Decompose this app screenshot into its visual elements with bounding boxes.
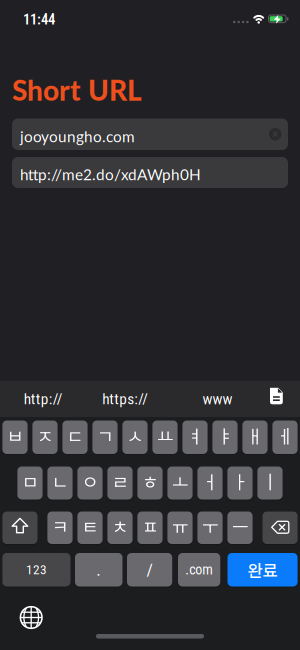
staticText: 완료 <box>248 558 278 582</box>
staticText: ㄱ <box>96 422 113 449</box>
staticText: ㅍ <box>141 512 158 539</box>
button[interactable]: ㅑ <box>212 420 238 454</box>
staticText: ㅂ <box>6 422 23 449</box>
staticText: ㅗ <box>171 467 188 494</box>
staticText: ㄹ <box>111 467 128 494</box>
button[interactable]: ㅈ <box>32 420 58 454</box>
button[interactable]: ㅣ <box>257 466 283 499</box>
button[interactable]: ㅁ <box>17 466 43 499</box>
button[interactable]: Delete <box>262 511 298 544</box>
button[interactable]: ㅇ <box>77 466 103 499</box>
staticText: .com <box>185 561 213 578</box>
button[interactable]: ㅗ <box>167 466 193 499</box>
staticText: ㅑ <box>216 422 233 449</box>
button[interactable]: ㅌ <box>77 511 103 544</box>
staticText: www <box>202 390 232 408</box>
button[interactable]: ㄹ <box>107 466 133 499</box>
button[interactable]: ㄷ <box>62 420 88 454</box>
staticText: jooyoungho.com <box>20 127 135 145</box>
staticText: ㅊ <box>111 512 128 539</box>
button[interactable]: 123 <box>2 553 70 586</box>
staticText: ㅠ <box>171 512 188 539</box>
staticText: ㄷ <box>66 422 83 449</box>
button[interactable]: ㅜ <box>197 511 223 544</box>
staticText: 123 <box>26 562 47 577</box>
button[interactable]: ㄴ <box>47 466 73 499</box>
button[interactable]: ㅠ <box>167 511 193 544</box>
staticText: ㅜ <box>201 512 218 539</box>
staticText: / <box>147 560 153 580</box>
button[interactable]: ㅊ <box>107 511 133 544</box>
button[interactable]: Next keyboard <box>0 0 300 650</box>
staticText: ㅋ <box>51 512 68 539</box>
staticText: http://me2.do/xdAWph0H <box>20 165 201 183</box>
button[interactable]: ㅋ <box>47 511 73 544</box>
staticText: ㅛ <box>156 422 173 449</box>
staticText: ㅐ <box>246 422 263 449</box>
staticText: http:// <box>24 390 63 408</box>
button[interactable]: . <box>75 553 122 586</box>
button[interactable]: ㅔ <box>272 420 298 454</box>
button[interactable]: ㅍ <box>137 511 163 544</box>
button[interactable]: ㅕ <box>182 420 208 454</box>
button[interactable]: Clear text <box>269 128 281 140</box>
button[interactable]: / <box>127 553 172 586</box>
staticText: ㅇ <box>81 467 98 494</box>
staticText: ㅎ <box>141 467 158 494</box>
staticText: ㅏ <box>231 467 248 494</box>
button[interactable]: ㅡ <box>227 511 253 544</box>
button[interactable]: ㅅ <box>122 420 148 454</box>
staticText: ㅌ <box>81 512 98 539</box>
button[interactable]: www <box>179 381 255 417</box>
button[interactable]: .com <box>178 553 220 586</box>
button[interactable]: http:// <box>5 381 81 417</box>
button[interactable]: ㅛ <box>152 420 178 454</box>
staticText: ㅈ <box>36 422 53 449</box>
staticText: ㅔ <box>276 422 293 449</box>
button[interactable]: ㅎ <box>137 466 163 499</box>
button[interactable]: ㅂ <box>2 420 28 454</box>
staticText: ㄴ <box>51 467 68 494</box>
button[interactable]: ㅓ <box>197 466 223 499</box>
button[interactable]: ㅐ <box>242 420 268 454</box>
button[interactable]: ㅏ <box>227 466 253 499</box>
button[interactable]: Shift <box>2 511 37 544</box>
button[interactable]: Paste <box>255 385 297 421</box>
staticText: ㅓ <box>201 467 218 494</box>
staticText: Short URL <box>12 73 142 107</box>
staticText: ㅕ <box>186 422 203 449</box>
staticText: ㅣ <box>261 467 278 494</box>
button[interactable]: ㄱ <box>92 420 118 454</box>
staticText: ㅁ <box>21 467 38 494</box>
staticText: ㅡ <box>231 512 248 539</box>
button[interactable]: 완료 <box>227 553 298 586</box>
staticText: https:// <box>102 390 148 408</box>
staticText: 11:44 <box>23 11 55 28</box>
staticText: . <box>96 560 101 580</box>
button[interactable]: https:// <box>87 381 163 417</box>
staticText: ㅅ <box>126 422 143 449</box>
